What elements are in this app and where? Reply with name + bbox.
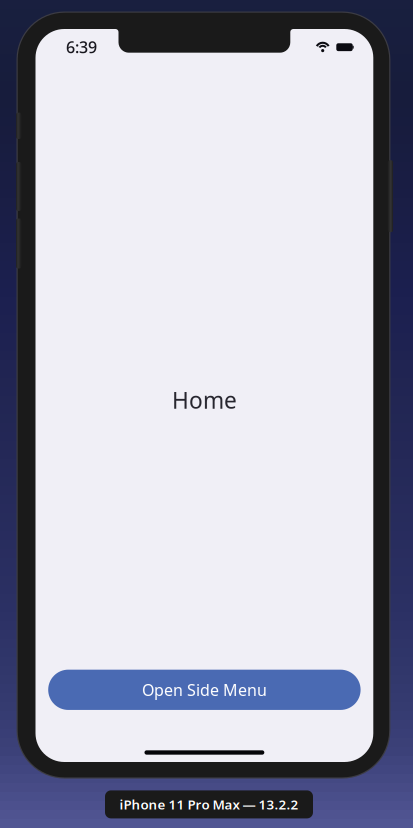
button[interactable]: Open Side Menu xyxy=(48,670,361,710)
staticText: iPhone 11 Pro Max — 13.2.2 xyxy=(119,795,298,813)
staticText: Open Side Menu xyxy=(142,679,267,700)
staticText: Home xyxy=(172,385,237,415)
staticText: 6:39 xyxy=(66,36,97,58)
